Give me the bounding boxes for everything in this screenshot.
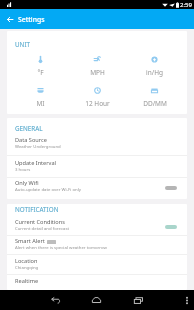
- button[interactable]: °F: [11, 56, 69, 77]
- staticText: °F: [37, 68, 44, 77]
- staticText: in/Hg: [146, 68, 163, 77]
- staticText: UNIT: [15, 40, 31, 49]
- button[interactable]: Recent apps: [128, 290, 148, 310]
- button[interactable]: More options: [180, 290, 194, 310]
- button[interactable]: Smart Alert: [7, 238, 187, 251]
- staticText: MPH: [90, 68, 105, 77]
- staticText: 3 hours: [15, 166, 31, 172]
- button[interactable]: Back: [0, 9, 20, 29]
- staticText: Realtime: [15, 277, 39, 284]
- staticText: Smart Alert: [15, 237, 45, 245]
- staticText: 12 Hour: [85, 99, 110, 108]
- staticText: DD/MM: [143, 99, 167, 108]
- button[interactable]: MI: [11, 87, 69, 108]
- staticText: 2:59: [180, 1, 192, 9]
- staticText: Location: [15, 257, 38, 265]
- button[interactable]: Back: [45, 290, 65, 310]
- button[interactable]: Data Source: [7, 137, 187, 150]
- button[interactable]: DD/MM: [126, 87, 183, 108]
- staticText: Auto-update date over Wi-Fi only: [15, 186, 82, 192]
- button[interactable]: 12 Hour: [69, 87, 126, 108]
- button[interactable]: in/Hg: [126, 56, 183, 77]
- staticText: Current Conditions: [15, 218, 65, 226]
- staticText: Update Interval: [15, 159, 56, 167]
- button[interactable]: Home: [86, 290, 106, 310]
- staticText: Data Source: [15, 136, 47, 144]
- button[interactable]: Current Conditions: [7, 219, 187, 232]
- button[interactable]: Toggle Only Wifi: [165, 186, 177, 190]
- staticText: GENERAL: [15, 124, 43, 133]
- staticText: Settings: [18, 15, 45, 24]
- button[interactable]: Realtime: [7, 278, 187, 285]
- staticText: Current detail and forecast: [15, 225, 70, 231]
- button[interactable]: Only Wifi: [7, 180, 187, 193]
- staticText: Weather Underground: [15, 143, 61, 149]
- staticText: Only Wifi: [15, 179, 39, 187]
- button[interactable]: Update Interval: [7, 160, 187, 173]
- staticText: MI: [36, 99, 45, 108]
- staticText: Alert when there is special weather tomo…: [15, 244, 107, 250]
- button[interactable]: Toggle Current Conditions: [165, 225, 177, 229]
- staticText: NOTIFICATION: [15, 205, 59, 214]
- staticText: Chiangqing: [15, 264, 39, 270]
- button[interactable]: MPH: [69, 56, 126, 77]
- button[interactable]: Location: [7, 258, 187, 271]
